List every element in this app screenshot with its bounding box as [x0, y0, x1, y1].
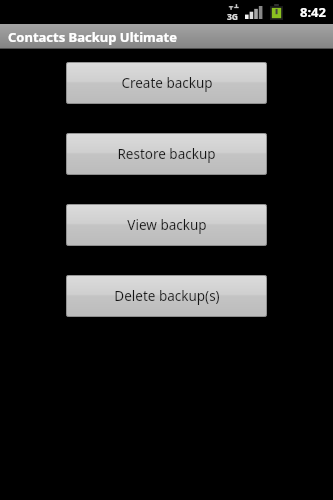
- staticText: Contacts Backup Ultimate: [8, 28, 177, 46]
- staticText: View backup: [127, 216, 207, 234]
- other: Signal strength: [245, 6, 263, 19]
- staticText: Restore backup: [117, 145, 216, 163]
- button[interactable]: Restore backup: [66, 133, 267, 175]
- other: Battery: [270, 4, 283, 20]
- staticText: 3G: [227, 11, 239, 23]
- button[interactable]: Create backup: [66, 62, 267, 104]
- staticText: 8:42: [300, 3, 326, 21]
- button[interactable]: Delete backup(s): [66, 275, 267, 317]
- button[interactable]: View backup: [66, 204, 267, 246]
- staticText: Create backup: [121, 74, 213, 92]
- staticText: Delete backup(s): [114, 287, 220, 305]
